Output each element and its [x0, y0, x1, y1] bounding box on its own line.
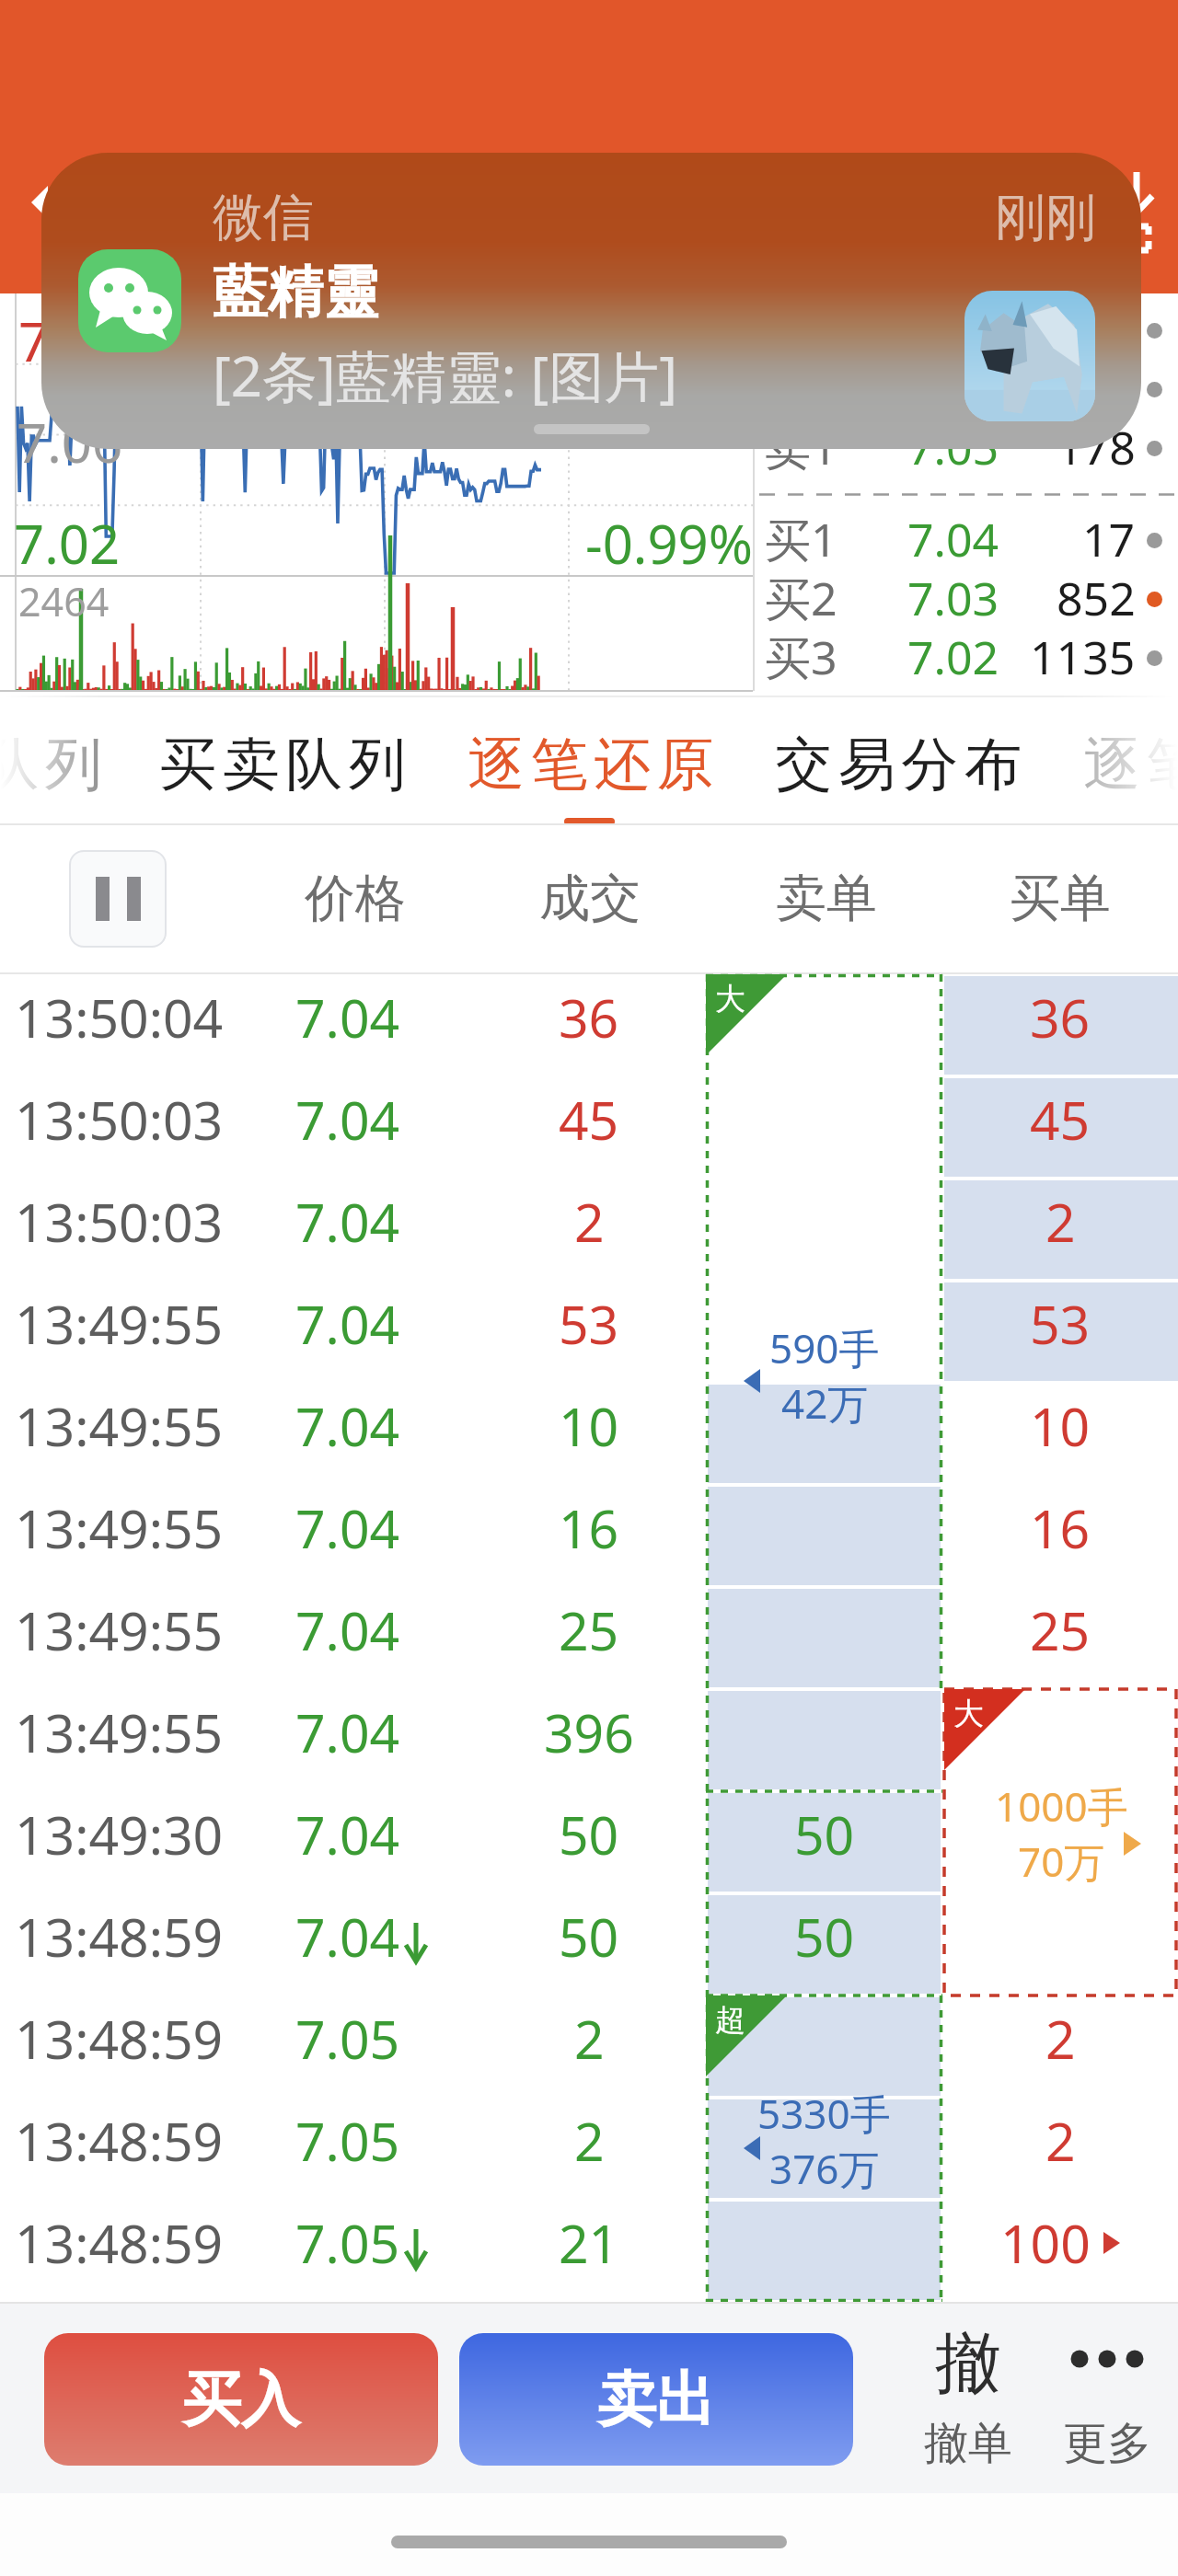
staticText: 逐笔还原	[465, 729, 717, 800]
staticText: 撤	[935, 2322, 1001, 2406]
staticText: 13:50:03	[15, 1186, 224, 1258]
staticText: 刚刚	[995, 186, 1096, 249]
staticText: 53	[559, 1288, 619, 1360]
staticText: 成交	[539, 867, 641, 930]
button[interactable]: 交易分布	[743, 696, 1051, 825]
button[interactable]: 13:49:55	[0, 1281, 1178, 1383]
staticText: 交易分布	[772, 729, 1024, 800]
staticText: 1135	[1030, 626, 1136, 684]
staticText: 2	[1045, 2105, 1076, 2177]
staticText: 13:48:59	[15, 1901, 224, 1972]
staticText: 36	[1030, 982, 1091, 1053]
staticText: 17	[1082, 508, 1136, 567]
staticText: 价格	[305, 867, 406, 930]
button[interactable]: 买2	[755, 569, 1178, 628]
staticText: 90	[1082, 357, 1136, 416]
staticText: 7.04	[295, 1390, 400, 1462]
staticText: 7.05	[295, 2105, 400, 2177]
staticText: 376万	[769, 2141, 880, 2196]
button[interactable]: 13:48:59	[0, 2098, 1178, 2200]
button[interactable]: 13:50:04	[0, 974, 1178, 1076]
staticText: 7.02	[907, 626, 999, 684]
staticText: 卖出	[597, 2363, 715, 2437]
staticText: 卖单	[776, 867, 877, 930]
button[interactable]: 13:48:59	[0, 2200, 1178, 2302]
button[interactable]: 逐笔还原	[435, 696, 744, 825]
button[interactable]: 买1	[755, 511, 1178, 569]
staticText: 7.04	[295, 1901, 400, 1972]
button[interactable]: 买3	[755, 628, 1178, 687]
button[interactable]: 13:50:03	[0, 1179, 1178, 1281]
staticText: 大	[715, 980, 745, 1018]
staticText: 卖3	[765, 298, 837, 357]
button[interactable]: 价格队列	[0, 696, 132, 825]
staticText: 7.05	[907, 416, 999, 475]
staticText: 7.04	[295, 982, 400, 1053]
staticText: 价格队列	[0, 729, 105, 800]
staticText: 590手	[769, 1320, 880, 1375]
staticText: 25	[1030, 1594, 1091, 1666]
button[interactable]: 撤	[885, 2304, 1051, 2493]
staticText: 2	[574, 2003, 605, 2075]
button[interactable]: Scan	[1128, 166, 1178, 258]
button[interactable]: 13:48:59	[0, 1893, 1178, 1995]
staticText: 7.04	[295, 1084, 400, 1156]
button[interactable]: 卖出	[459, 2333, 853, 2466]
staticText: 13:49:55	[15, 1696, 224, 1768]
staticText: 7.05	[295, 2003, 400, 2075]
staticText: 更多	[1063, 2416, 1151, 2471]
staticText: 50	[794, 1901, 855, 1972]
button[interactable]: 13:49:55	[0, 1485, 1178, 1587]
staticText: 13:48:59	[15, 2105, 224, 2177]
staticText: 7.04	[295, 1799, 400, 1870]
staticText: 2	[574, 2105, 605, 2177]
staticText: 13:49:55	[15, 1288, 224, 1360]
staticText: 50	[559, 1901, 619, 1972]
staticText: 7.04	[295, 1288, 400, 1360]
button[interactable]: 逐笔还原	[1051, 696, 1178, 825]
staticText: 5330手	[757, 2086, 891, 2141]
staticText: 7.05	[907, 357, 999, 416]
button[interactable]: 13:49:55	[0, 1689, 1178, 1791]
button[interactable]: 卖2	[755, 360, 1178, 419]
staticText: 13:50:03	[15, 1084, 224, 1156]
button[interactable]: 13:49:55	[0, 1383, 1178, 1485]
staticText: 7.09	[18, 305, 125, 377]
button[interactable]: Back	[7, 178, 59, 230]
button[interactable]: 13:49:30	[0, 1791, 1178, 1893]
staticText: 2	[574, 1186, 605, 1258]
staticText: 2464	[18, 574, 110, 628]
staticText: 13:48:59	[15, 2003, 224, 2075]
staticText: 852	[1057, 567, 1136, 626]
staticText: 50	[559, 1799, 619, 1870]
staticText: 10	[559, 1390, 619, 1462]
staticText: 25	[559, 1594, 619, 1666]
staticText: 卖2	[765, 357, 837, 416]
staticText: 36	[559, 982, 619, 1053]
staticText: 逐笔还原	[1080, 729, 1178, 800]
staticText: 7.06	[907, 298, 999, 357]
staticText: 396	[544, 1696, 634, 1768]
staticText: 微信	[213, 186, 314, 249]
button[interactable]: Pause	[71, 852, 165, 946]
button[interactable]: 微信	[41, 153, 1141, 449]
button[interactable]: 13:49:55	[0, 1587, 1178, 1689]
button[interactable]: 卖3	[755, 301, 1178, 360]
staticText: 买单	[1010, 867, 1111, 930]
staticText: 7.03	[907, 567, 999, 626]
staticText: 7.04	[295, 1186, 400, 1258]
button[interactable]: 买卖队列	[127, 696, 435, 825]
staticText: 买卖队列	[156, 729, 409, 800]
button[interactable]: 买入	[44, 2333, 438, 2466]
button[interactable]: More	[1024, 2304, 1178, 2493]
button[interactable]: 卖1	[755, 419, 1178, 477]
staticText: 藍精靈	[213, 258, 378, 328]
staticText: 7.06	[17, 406, 123, 478]
staticText: 7.04	[295, 1492, 400, 1564]
staticText: 16	[559, 1492, 619, 1564]
staticText: 123	[1057, 298, 1136, 357]
staticText: [2条]藍精靈: [图片]	[213, 338, 677, 413]
button[interactable]: 13:50:03	[0, 1076, 1178, 1179]
staticText: 2	[1045, 2003, 1076, 2075]
button[interactable]: 13:48:59	[0, 1995, 1178, 2098]
